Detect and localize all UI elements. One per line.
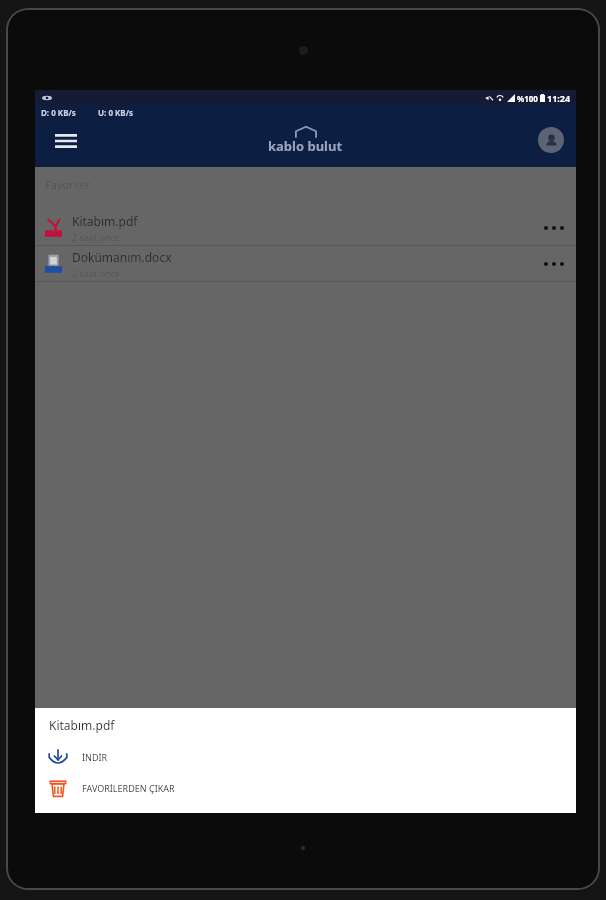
staticText: 2 saat önce bbox=[72, 231, 120, 243]
staticText: Kitabım.pdf bbox=[72, 213, 138, 229]
staticText: U: 0 KB/s bbox=[98, 107, 133, 118]
staticText: 2 saat önce bbox=[72, 267, 120, 279]
staticText: FAVORİLERDEN ÇIKAR bbox=[82, 782, 175, 794]
staticText: Dokümanım.docx bbox=[72, 249, 172, 265]
button[interactable]: İNDİR bbox=[35, 741, 576, 772]
staticText: D: 0 KB/s bbox=[41, 107, 76, 118]
staticText: Kitabım.pdf bbox=[49, 717, 115, 733]
button[interactable]: Open navigation menu bbox=[49, 124, 83, 158]
button[interactable]: Account bbox=[538, 127, 564, 153]
staticText: 11:24 bbox=[547, 92, 571, 104]
button[interactable]: FAVORİLERDEN ÇIKAR bbox=[35, 772, 576, 803]
staticText: İNDİR bbox=[82, 751, 108, 763]
staticText: Favoriler bbox=[45, 177, 91, 192]
button[interactable]: More options for Kitabım.pdf bbox=[534, 210, 574, 245]
button[interactable]: Kitabım.pdf bbox=[35, 210, 576, 245]
staticText: %100 bbox=[517, 93, 538, 104]
button[interactable]: More options for Dokümanım.docx bbox=[534, 246, 574, 281]
button[interactable]: Dokümanım.docx bbox=[35, 246, 576, 281]
staticText: kablo bulut bbox=[268, 137, 343, 155]
